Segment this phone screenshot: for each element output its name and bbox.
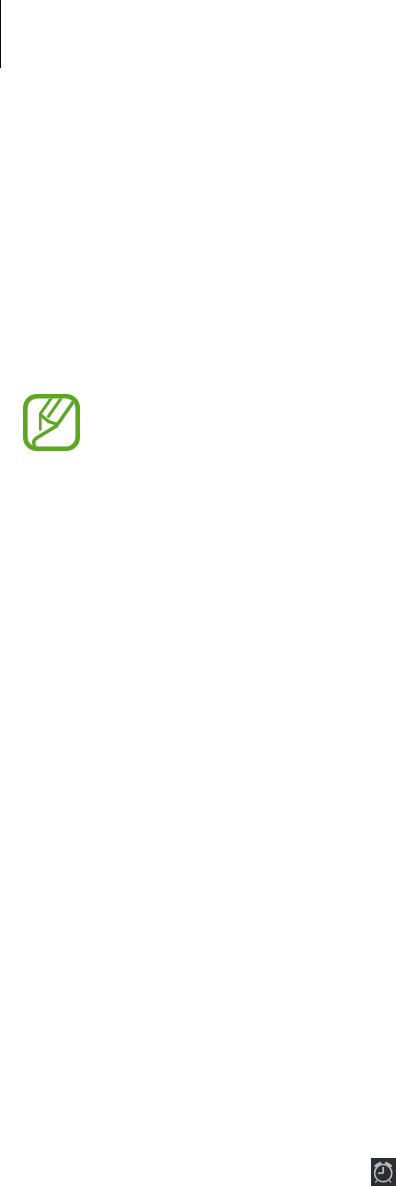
button[interactable]: Alarm xyxy=(371,1158,396,1186)
button[interactable]: S Note xyxy=(23,394,80,451)
